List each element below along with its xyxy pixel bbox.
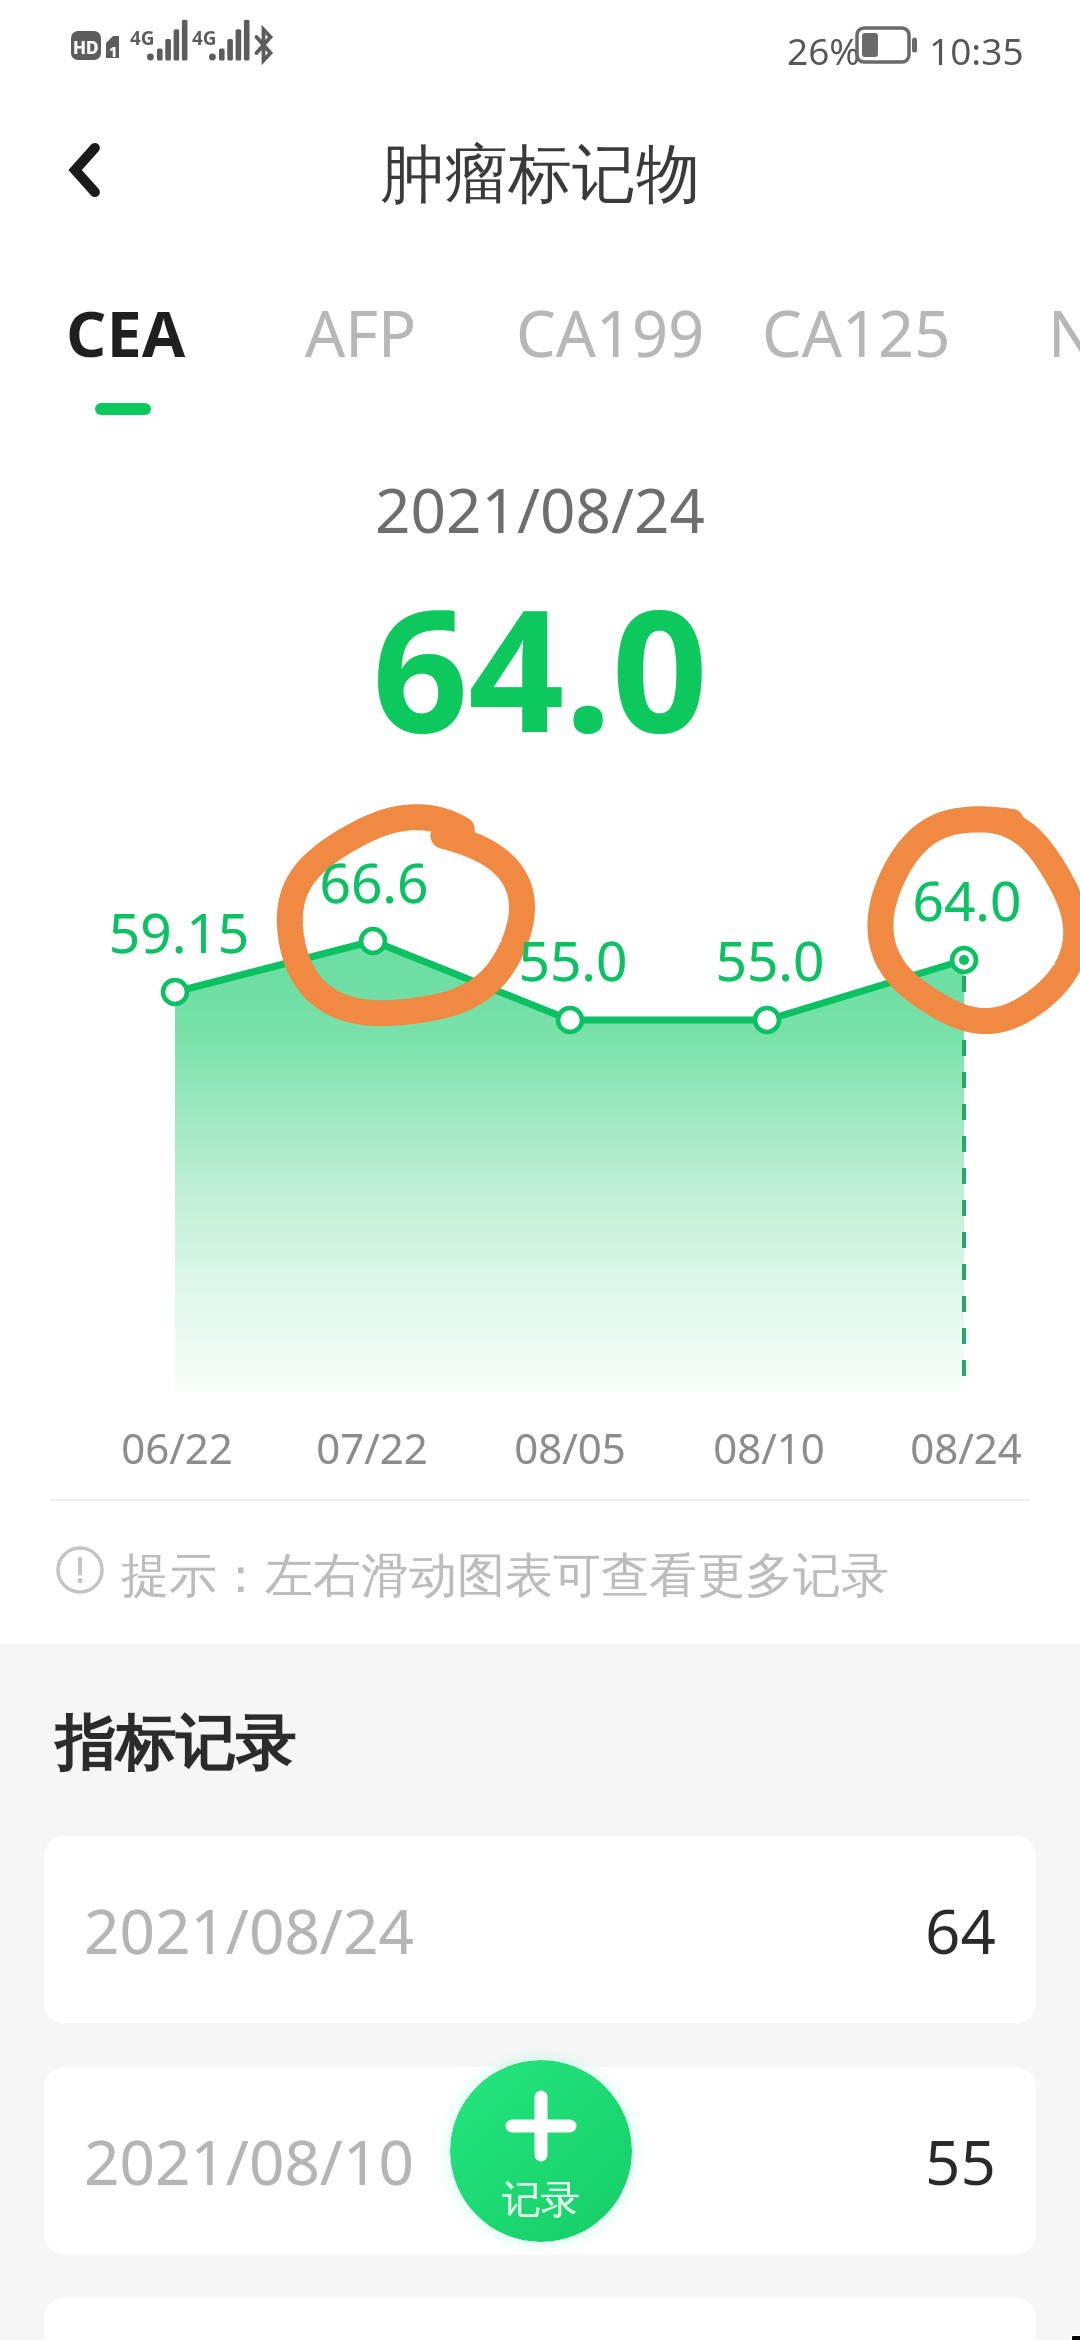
staticText: 2021/08/24 [0, 467, 1080, 551]
staticText: 4G [130, 25, 155, 51]
staticText: 记录 [450, 2175, 632, 2224]
button[interactable]: CA125 [742, 290, 971, 420]
staticText: CA199 [516, 290, 705, 376]
staticText: AFP [305, 290, 417, 376]
staticText: N [1048, 290, 1080, 376]
staticText: 1 [109, 41, 118, 61]
button[interactable]: N [1028, 290, 1080, 420]
staticText: 06/22 [27, 1419, 327, 1476]
button[interactable]: Back [30, 110, 140, 220]
staticText: 提示：左右滑动图表可查看更多记录 [121, 1546, 889, 1606]
staticText: 64 [925, 1888, 996, 1972]
staticText: 64.0 [0, 552, 1080, 781]
staticText: 08/05 [420, 1419, 720, 1476]
staticText: 55 [925, 2119, 996, 2203]
button[interactable]: AFP [285, 290, 437, 420]
staticText: 2021/08/10 [84, 2119, 414, 2203]
staticText: HD [73, 36, 99, 59]
staticText: 指标记录 [55, 1706, 295, 1782]
button[interactable]: CA199 [496, 290, 725, 420]
staticText: 2021/08/24 [84, 1888, 414, 1972]
staticText: 4G [192, 25, 217, 51]
staticText: CEA [66, 290, 186, 376]
staticText: 肿瘤标记物 [0, 134, 1080, 215]
staticText: 08/24 [816, 1419, 1080, 1476]
staticText: 64.0 [817, 862, 1080, 937]
staticText: 10:35 [929, 25, 1024, 75]
staticText: 55.0 [620, 922, 920, 997]
staticText: CA125 [762, 290, 951, 376]
button[interactable]: 添加记录 [450, 2060, 632, 2242]
button[interactable]: 2021/08/10 [44, 2067, 1036, 2254]
button[interactable]: 2021/08/24 [44, 1836, 1036, 2023]
staticText: 08/10 [619, 1419, 919, 1476]
staticText: 66.6 [224, 844, 524, 919]
button[interactable]: CEA [46, 290, 206, 420]
staticText: 07/22 [222, 1419, 522, 1476]
staticText: 59.15 [29, 894, 329, 969]
staticText: 55.0 [423, 922, 723, 997]
staticText: 26% [787, 25, 861, 75]
